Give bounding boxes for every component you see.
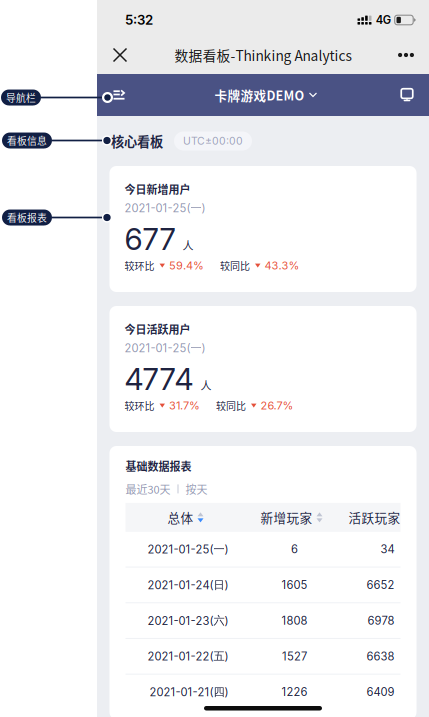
staticText: 人 [200,377,211,393]
staticText: 6409 [366,685,394,699]
staticText: 看板信息 [7,133,47,148]
staticText: 4774 [124,361,193,397]
staticText: UTC±00:00 [183,135,243,147]
staticText: 核心看板 [111,131,163,150]
staticText: 1527 [282,649,307,663]
staticText: 6 [291,542,298,556]
staticText: 今日新增用户 [124,181,190,197]
staticText: 总体 [167,508,193,526]
staticText: 最近30天 [125,481,170,497]
staticText: 较环比 [124,398,154,413]
staticText: 43.3% [264,259,299,272]
staticText: 人 [182,237,193,253]
staticText: 今日活跃用户 [124,321,190,337]
staticText: 6638 [366,649,394,663]
staticText: 34 [380,542,394,556]
button[interactable]: Desktop view [392,80,422,110]
staticText: 看板报表 [7,210,47,225]
staticText: 6652 [366,578,394,592]
staticText: 较同比 [216,398,246,413]
button[interactable]: Close [99,36,141,74]
button[interactable]: 新增玩家 [228,503,348,532]
staticText: 2021-01-24(日) [147,578,228,592]
staticText: 数据看板-Thinking Analytics [174,45,351,65]
staticText: 基础数据报表 [125,458,191,474]
staticText: 59.4% [169,259,204,272]
staticText: 5:32 [125,12,153,28]
staticText: 2021-01-25(一) [124,201,205,215]
staticText: 6978 [367,614,394,627]
button[interactable]: 总体 [125,503,228,532]
staticText: 卡牌游戏DEMO [214,86,304,104]
staticText: 1226 [281,685,307,699]
staticText: 新增玩家 [260,508,312,526]
staticText: 较环比 [124,258,154,273]
button[interactable]: 卡牌游戏DEMO [209,86,316,104]
staticText: 1808 [281,614,307,627]
staticText: 26.7% [260,399,293,412]
button[interactable]: Menu [104,80,134,110]
staticText: 677 [124,221,175,257]
staticText: 1605 [281,578,307,592]
staticText: 2021-01-25(一) [147,542,228,556]
button[interactable]: More [385,36,427,74]
staticText: 2021-01-22(五) [147,649,228,663]
staticText: 2021-01-23(六) [147,614,228,628]
staticText: 2021-01-25(一) [124,341,205,355]
staticText: 按天 [185,481,207,497]
staticText: 导航栏 [6,90,36,105]
staticText: 较同比 [220,258,250,273]
staticText: 4G [376,13,391,27]
staticText: 31.7% [169,399,200,412]
staticText: 活跃玩家 [348,508,400,526]
staticText: 2021-01-21(四) [149,685,228,699]
